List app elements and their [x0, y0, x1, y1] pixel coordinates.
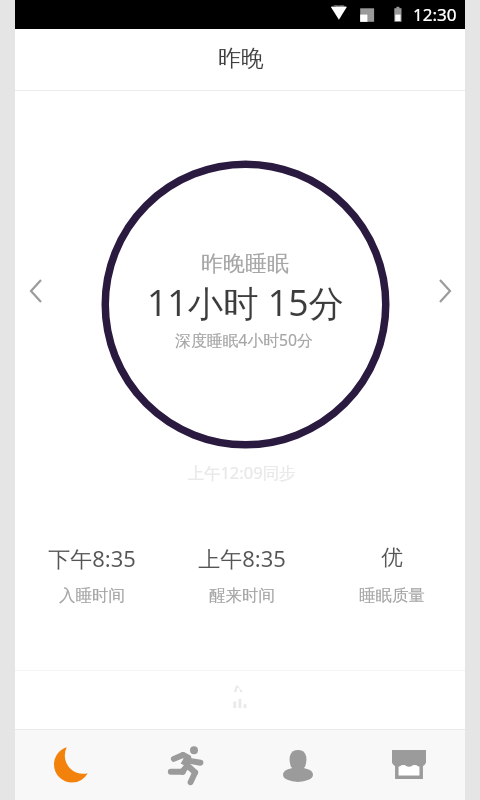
staticText: 12:30 — [413, 3, 457, 26]
staticText: 深度睡眠4小时50分 — [175, 329, 313, 351]
staticText: 上午12:09同步 — [187, 461, 296, 484]
button[interactable]: Activity — [127, 730, 239, 800]
staticText: 下午8:35 — [48, 543, 136, 573]
staticText: 醒来时间 — [209, 585, 275, 606]
button[interactable]: 优 — [317, 543, 467, 606]
staticText: 入睡时间 — [59, 585, 125, 606]
button[interactable]: Sleep — [15, 730, 127, 800]
staticText: 上午8:35 — [198, 543, 286, 573]
staticText: 睡眠质量 — [359, 585, 425, 606]
staticText: 昨晚睡眠 — [201, 250, 289, 278]
button[interactable]: 上午8:35 — [167, 543, 317, 606]
staticText: 11小时 15分 — [147, 278, 344, 326]
button[interactable]: 下午8:35 — [17, 543, 167, 606]
staticText: 优 — [381, 544, 403, 572]
staticText: 昨晚 — [218, 44, 264, 73]
button[interactable]: Previous night — [13, 268, 59, 314]
button[interactable]: Store — [352, 730, 465, 800]
button[interactable]: Profile — [239, 730, 352, 800]
button[interactable]: Next night — [422, 268, 468, 314]
